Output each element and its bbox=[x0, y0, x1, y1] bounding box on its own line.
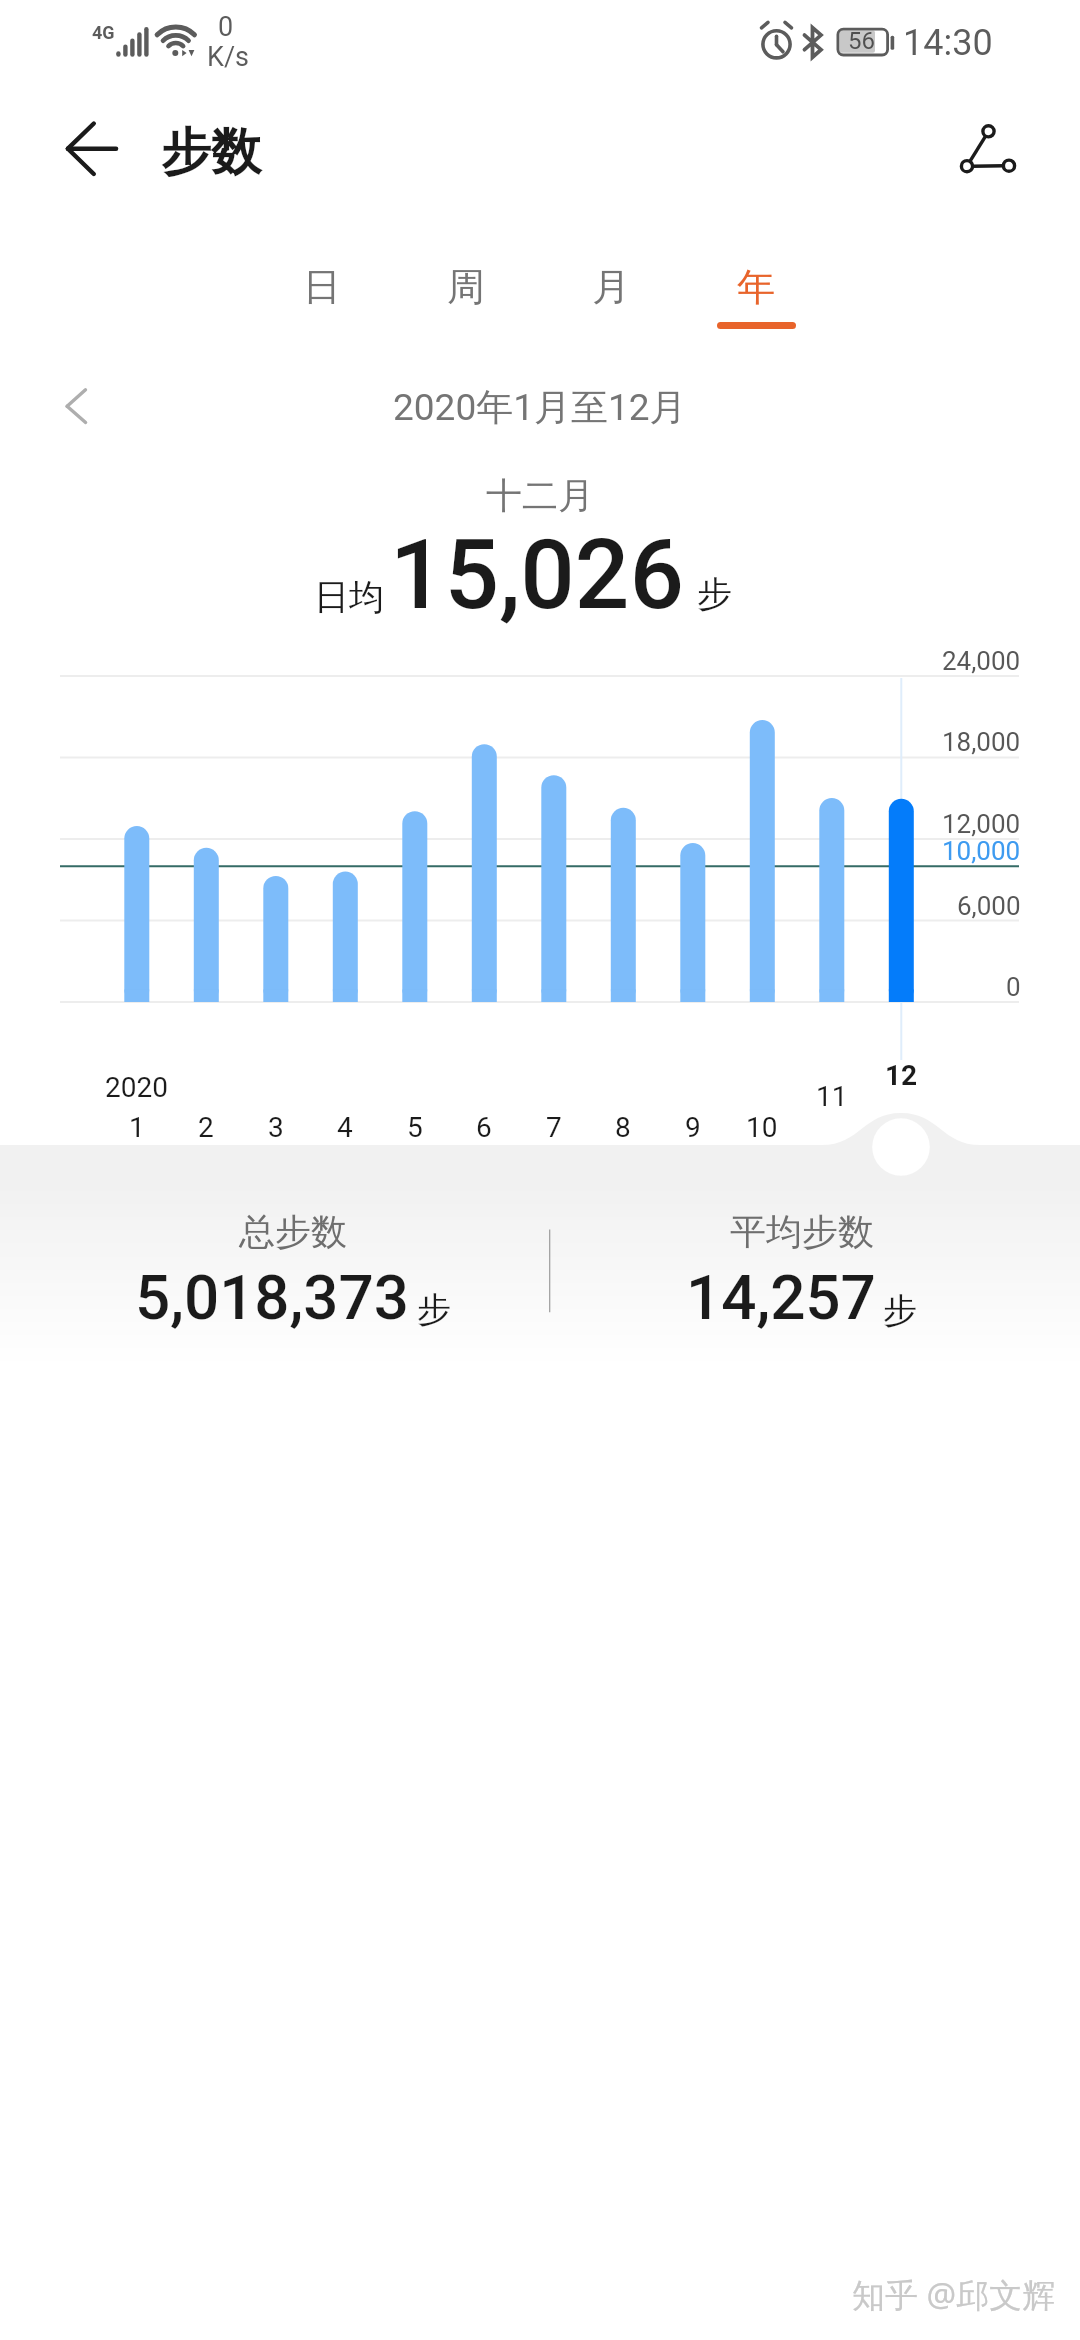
staticText: 4 bbox=[337, 1111, 353, 1144]
staticText: 5 bbox=[407, 1111, 423, 1144]
staticText: 56 bbox=[848, 27, 875, 55]
staticText: 知乎 @邱文辉 bbox=[852, 2272, 1056, 2317]
staticText: 14,257 bbox=[686, 1261, 876, 1334]
staticText: 2 bbox=[198, 1111, 214, 1144]
staticText: 总步数 bbox=[239, 1209, 347, 1254]
staticText: 2020 bbox=[105, 1071, 168, 1104]
button[interactable]: 日 bbox=[267, 263, 377, 355]
staticText: 10 bbox=[746, 1111, 778, 1144]
staticText: 步 bbox=[883, 1289, 917, 1332]
staticText: 9 bbox=[685, 1111, 701, 1144]
staticText: 15,026 bbox=[390, 519, 684, 632]
staticText: 12 bbox=[885, 1059, 918, 1092]
staticText: 平均步数 bbox=[730, 1209, 874, 1254]
staticText: 6,000 bbox=[957, 891, 1021, 921]
staticText: 2020年1月至12月 bbox=[393, 384, 687, 431]
staticText: 14:30 bbox=[903, 22, 993, 64]
staticText: 日均 bbox=[314, 575, 384, 619]
staticText: 步 bbox=[697, 572, 732, 616]
staticText: 10,000 bbox=[942, 836, 1021, 866]
staticText: 步数 bbox=[161, 121, 261, 184]
staticText: 18,000 bbox=[942, 727, 1021, 757]
button[interactable]: 月 bbox=[556, 263, 666, 355]
staticText: 12,000 bbox=[942, 809, 1021, 839]
staticText: 月 bbox=[592, 263, 630, 311]
staticText: 1 bbox=[129, 1111, 145, 1144]
staticText: 步 bbox=[417, 1288, 451, 1331]
staticText: 11 bbox=[816, 1080, 848, 1113]
staticText: 0 bbox=[218, 11, 234, 43]
staticText: 十二月 bbox=[486, 473, 594, 518]
staticText: 年 bbox=[737, 263, 775, 311]
button[interactable]: Previous period bbox=[40, 372, 112, 444]
staticText: 3 bbox=[268, 1111, 284, 1144]
staticText: 0 bbox=[1006, 972, 1021, 1002]
staticText: 6 bbox=[476, 1111, 492, 1144]
button[interactable]: Share bbox=[940, 102, 1036, 198]
button[interactable]: 周 bbox=[411, 263, 521, 355]
staticText: 4G bbox=[92, 22, 115, 43]
staticText: 周 bbox=[447, 263, 485, 311]
staticText: 7 bbox=[546, 1111, 562, 1144]
staticText: 日 bbox=[303, 263, 341, 311]
button[interactable]: Back bbox=[46, 105, 136, 195]
button[interactable]: 年 bbox=[701, 263, 811, 355]
staticText: 8 bbox=[615, 1111, 631, 1144]
staticText: 24,000 bbox=[942, 646, 1021, 676]
staticText: K/s bbox=[207, 41, 250, 73]
staticText: 5,018,373 bbox=[135, 1261, 409, 1334]
